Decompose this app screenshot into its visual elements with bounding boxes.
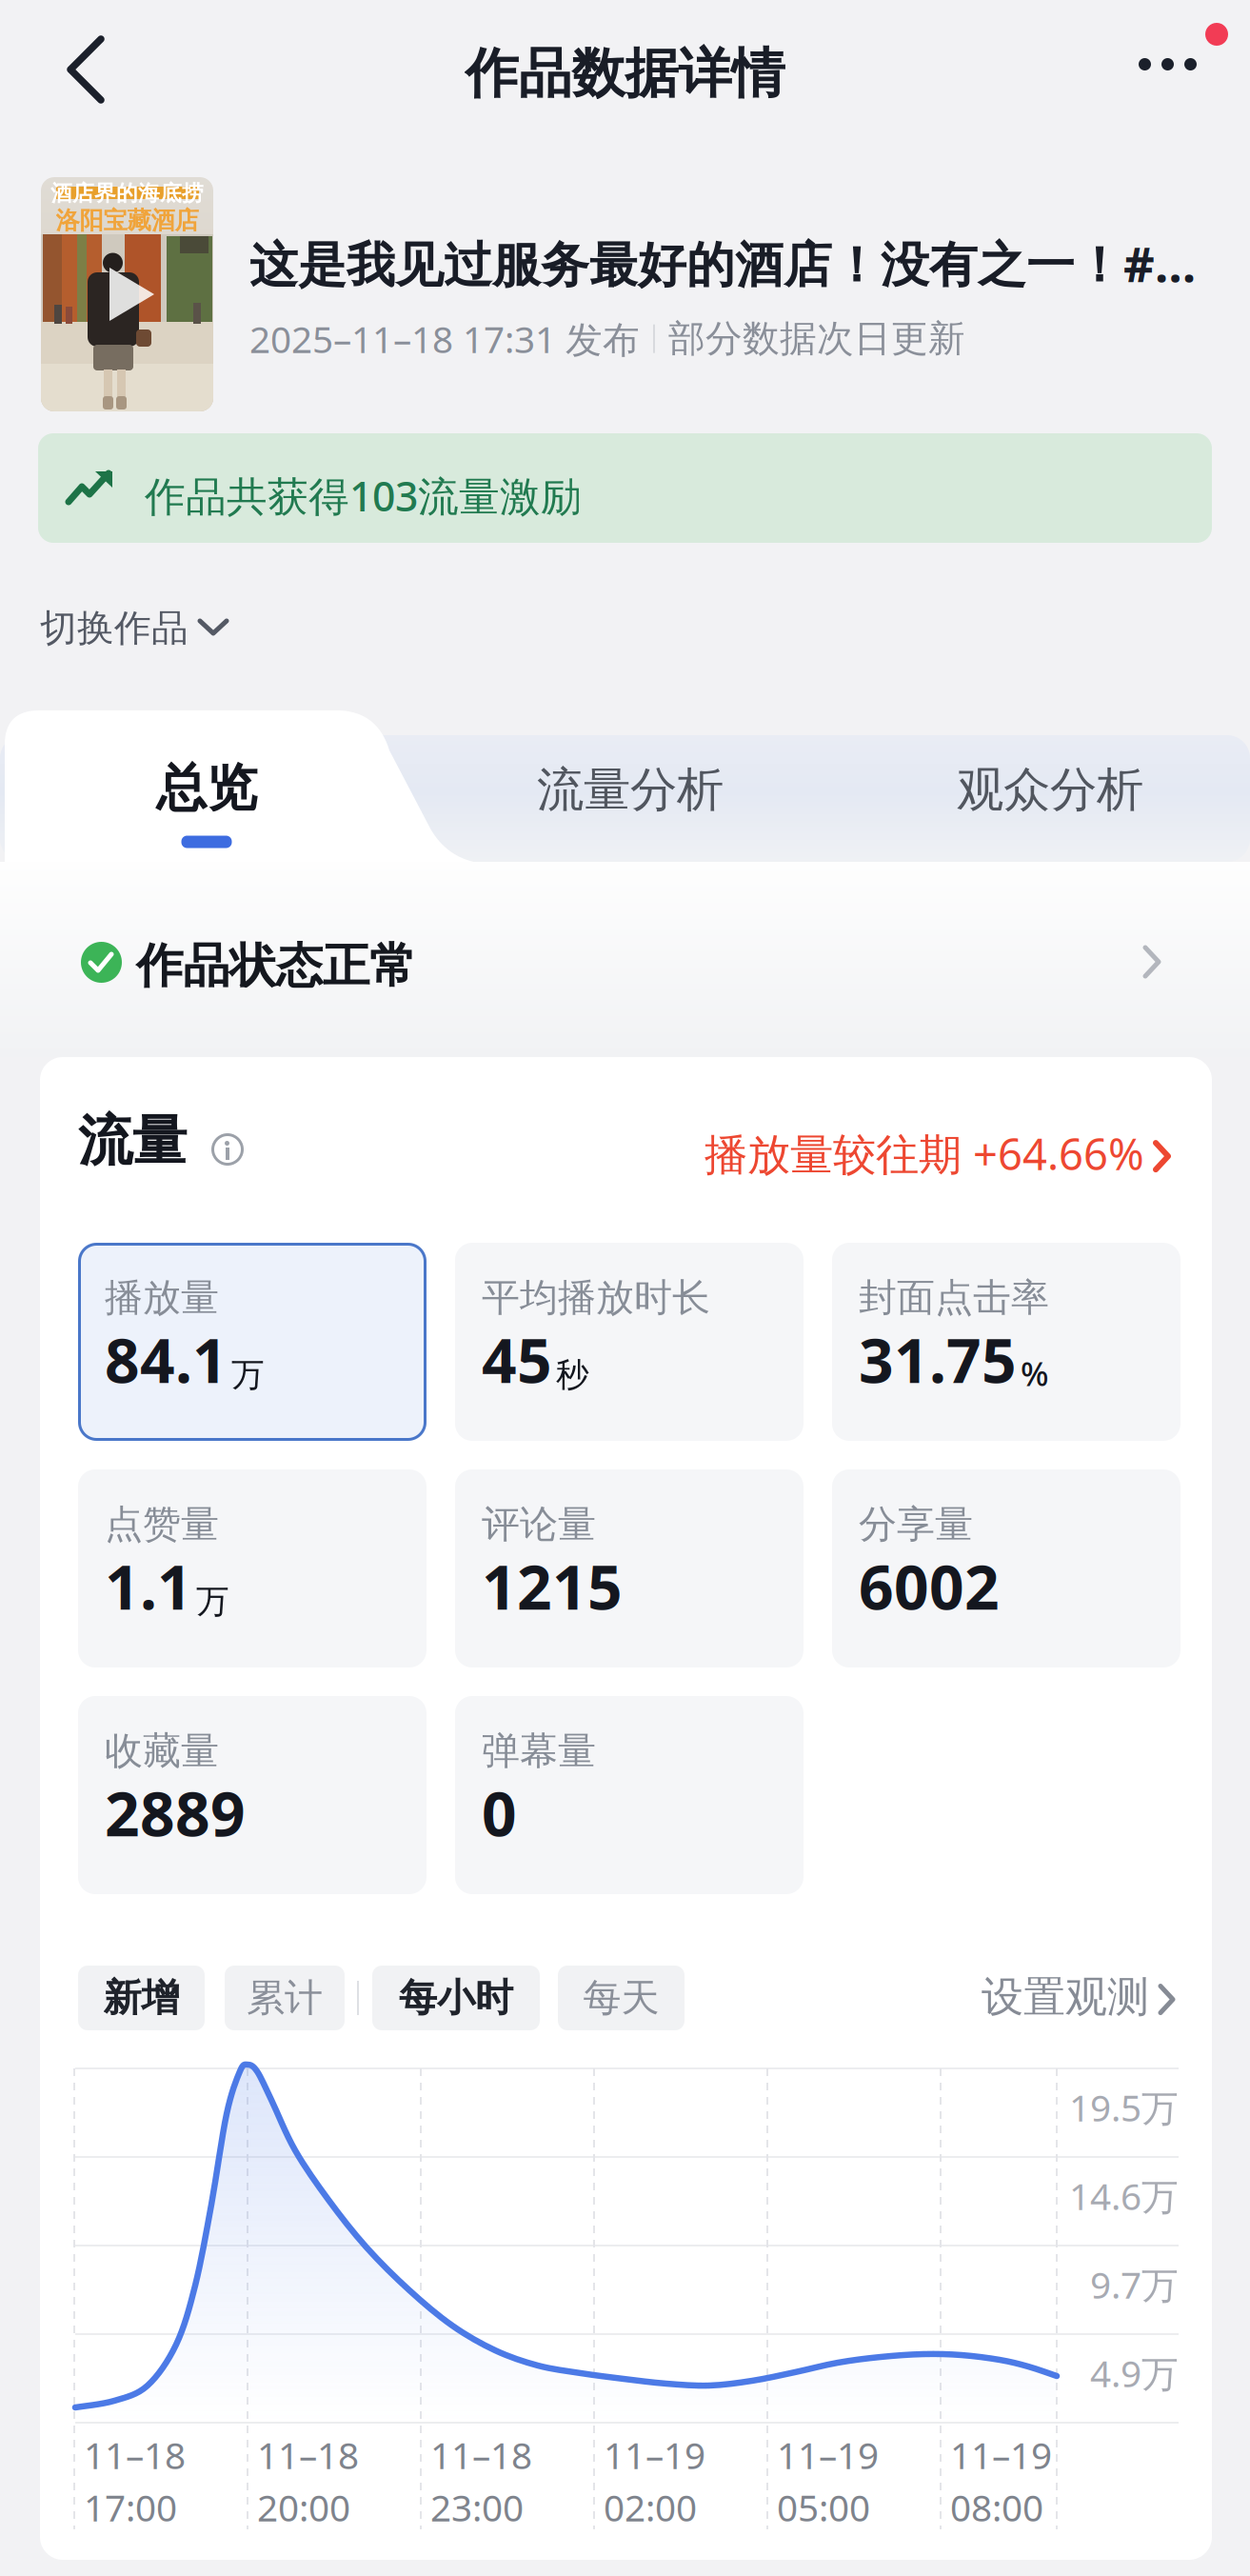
button[interactable]: 评论量 bbox=[455, 1469, 804, 1667]
staticText: 11–19 bbox=[777, 2430, 879, 2479]
staticText: 08:00 bbox=[950, 2483, 1043, 2532]
staticText: 设置观测 bbox=[982, 1971, 1149, 2023]
button[interactable]: 封面点击率 bbox=[832, 1243, 1181, 1441]
button[interactable]: 流量分析 bbox=[499, 742, 762, 838]
button[interactable]: 作品状态正常 bbox=[0, 862, 1250, 1014]
staticText: 11–19 bbox=[604, 2430, 705, 2479]
button[interactable]: 酒店界的海底捞 bbox=[0, 177, 1250, 411]
staticText: 切换作品 bbox=[40, 606, 188, 651]
button[interactable]: 收藏量 bbox=[78, 1696, 427, 1894]
staticText: 评论量 bbox=[482, 1501, 596, 1548]
staticText: 万 bbox=[196, 1581, 229, 1622]
button[interactable]: 切换作品 bbox=[40, 606, 249, 649]
staticText: 弹幕量 bbox=[482, 1727, 596, 1774]
staticText: 累计 bbox=[247, 1975, 323, 2021]
staticText: 84.1 bbox=[105, 1319, 228, 1400]
button[interactable]: 分享量 bbox=[832, 1469, 1181, 1667]
staticText: 6002 bbox=[859, 1546, 1000, 1627]
staticText: 4.9万 bbox=[1090, 2348, 1179, 2397]
staticText: 秒 bbox=[556, 1355, 589, 1395]
staticText: 总览 bbox=[156, 757, 257, 819]
staticText: 2889 bbox=[105, 1772, 246, 1853]
staticText: 19.5万 bbox=[1069, 2083, 1179, 2132]
button[interactable]: 平均播放时长 bbox=[455, 1243, 804, 1441]
staticText: 封面点击率 bbox=[859, 1274, 1049, 1321]
staticText: 2025–11–18 17:31 发布 bbox=[249, 314, 640, 363]
staticText: 02:00 bbox=[604, 2483, 697, 2532]
staticText: 观众分析 bbox=[957, 761, 1143, 819]
button[interactable]: 总览 bbox=[128, 757, 286, 848]
button[interactable]: 弹幕量 bbox=[455, 1696, 804, 1894]
staticText: 万 bbox=[231, 1355, 265, 1395]
staticText: 14.6万 bbox=[1069, 2171, 1179, 2220]
button[interactable]: 点赞量 bbox=[78, 1469, 427, 1667]
button[interactable]: More bbox=[1127, 47, 1208, 82]
button[interactable]: 设置观测 bbox=[792, 1971, 1173, 2023]
staticText: 每小时 bbox=[399, 1975, 513, 2021]
staticText: 17:00 bbox=[84, 2483, 177, 2532]
staticText: 作品共获得103流量激励 bbox=[145, 469, 582, 523]
button[interactable]: 累计 bbox=[225, 1966, 345, 2030]
staticText: 每天 bbox=[583, 1975, 659, 2021]
staticText: 1215 bbox=[482, 1546, 623, 1627]
staticText: 部分数据次日更新 bbox=[668, 316, 965, 361]
button[interactable]: 每天 bbox=[558, 1966, 685, 2030]
staticText: % bbox=[1021, 1351, 1049, 1395]
button[interactable]: 播放量 bbox=[78, 1243, 427, 1441]
staticText: 作品状态正常 bbox=[136, 937, 416, 995]
staticText: 洛阳宝藏酒店 bbox=[56, 206, 198, 235]
staticText: 11–18 bbox=[430, 2430, 532, 2479]
staticText: 酒店界的海底捞 bbox=[50, 180, 204, 206]
staticText: 11–18 bbox=[84, 2430, 186, 2479]
button[interactable]: 每小时 bbox=[372, 1966, 540, 2030]
button[interactable]: 新增 bbox=[78, 1966, 205, 2030]
staticText: 平均播放时长 bbox=[482, 1274, 710, 1321]
staticText: 播放量较往期 +64.66% bbox=[704, 1125, 1144, 1182]
button[interactable]: Back bbox=[55, 26, 116, 113]
staticText: 流量分析 bbox=[537, 761, 724, 819]
staticText: 1.1 bbox=[105, 1546, 192, 1627]
staticText: 分享量 bbox=[859, 1501, 973, 1548]
staticText: 播放量 bbox=[105, 1274, 219, 1321]
button[interactable]: 作品共获得103流量激励 bbox=[38, 433, 1212, 543]
staticText: 11–19 bbox=[950, 2430, 1052, 2479]
staticText: 20:00 bbox=[257, 2483, 350, 2532]
staticText: 31.75 bbox=[859, 1319, 1017, 1400]
staticText: 45 bbox=[482, 1319, 552, 1400]
staticText: 23:00 bbox=[430, 2483, 524, 2532]
staticText: 收藏量 bbox=[105, 1727, 219, 1774]
staticText: 这是我见过服务最好的酒店！没有之一！#… bbox=[249, 231, 1196, 296]
staticText: 作品数据详情 bbox=[465, 41, 785, 106]
staticText: 新增 bbox=[103, 1975, 179, 2021]
button[interactable]: 观众分析 bbox=[919, 742, 1181, 838]
button[interactable]: 播放量较往期 +64.66% bbox=[78, 1125, 1168, 1182]
staticText: 0 bbox=[482, 1772, 517, 1853]
staticText: 11–18 bbox=[257, 2430, 359, 2479]
staticText: 点赞量 bbox=[105, 1501, 219, 1548]
staticText: 流量 bbox=[78, 1108, 187, 1175]
staticText: 05:00 bbox=[777, 2483, 870, 2532]
staticText: 9.7万 bbox=[1090, 2260, 1179, 2309]
